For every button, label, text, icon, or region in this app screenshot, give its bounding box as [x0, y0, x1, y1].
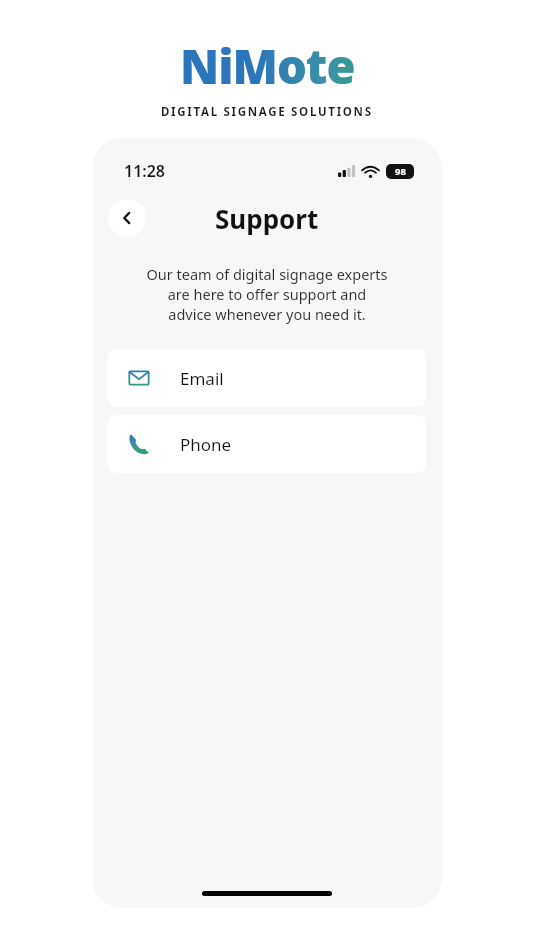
staticText: 98 — [395, 165, 406, 178]
staticText: Our team of digital signage experts are … — [92, 264, 442, 324]
button[interactable]: Back — [108, 199, 146, 237]
staticText: DIGITAL SIGNAGE SOLUTIONS — [161, 104, 373, 120]
staticText: Phone — [180, 433, 232, 456]
staticText: NiMote — [180, 34, 355, 98]
staticText: Email — [180, 367, 224, 390]
button[interactable]: Phone — [108, 415, 426, 473]
staticText: Support — [215, 201, 319, 236]
button[interactable]: Email — [108, 349, 426, 407]
staticText: 11:28 — [124, 160, 166, 182]
